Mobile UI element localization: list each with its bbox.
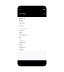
button[interactable]: Mail [17,36,46,39]
staticText: Contacts [19,39,25,41]
button[interactable]: Wallet [17,32,46,34]
button[interactable]: Privacy [17,29,46,32]
button[interactable]: Calendar [17,41,46,44]
staticText: Edit [43,13,45,15]
button[interactable]: Reminders [17,46,46,48]
staticText: Focus [19,25,24,27]
staticText: Display [19,20,24,22]
staticText: Privacy [19,30,25,31]
staticText: General [19,18,25,19]
button[interactable]: Notes [17,44,46,46]
staticText: Settings [19,13,26,15]
staticText: Sounds [19,22,25,24]
staticText: Wallet [19,32,22,34]
staticText: Reminders [19,46,27,48]
button[interactable]: Sounds [17,22,46,24]
staticText: Passwords [19,34,28,36]
staticText: 9:41 [19,8,22,10]
button[interactable]: General [17,17,46,20]
button[interactable]: Contacts [17,39,46,41]
button[interactable]: Passwords [17,34,46,36]
staticText: Mail [19,37,21,39]
staticText: Calendar [19,42,26,43]
staticText: Notes [19,44,23,46]
staticText: Screen Time [19,27,28,29]
staticText: Photos [19,49,24,51]
button[interactable]: Focus [17,24,46,27]
button[interactable]: Screen Time [17,27,46,29]
staticText: ıII ᗑ ▮ [43,8,45,10]
button[interactable]: Photos [17,48,46,51]
button[interactable]: Display [17,20,46,22]
